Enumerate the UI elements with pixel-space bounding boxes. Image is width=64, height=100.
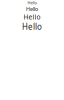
staticText: Hello — [27, 0, 36, 5]
staticText: Hello — [26, 5, 38, 12]
staticText: Hello — [23, 12, 40, 21]
staticText: Hello — [22, 21, 42, 32]
